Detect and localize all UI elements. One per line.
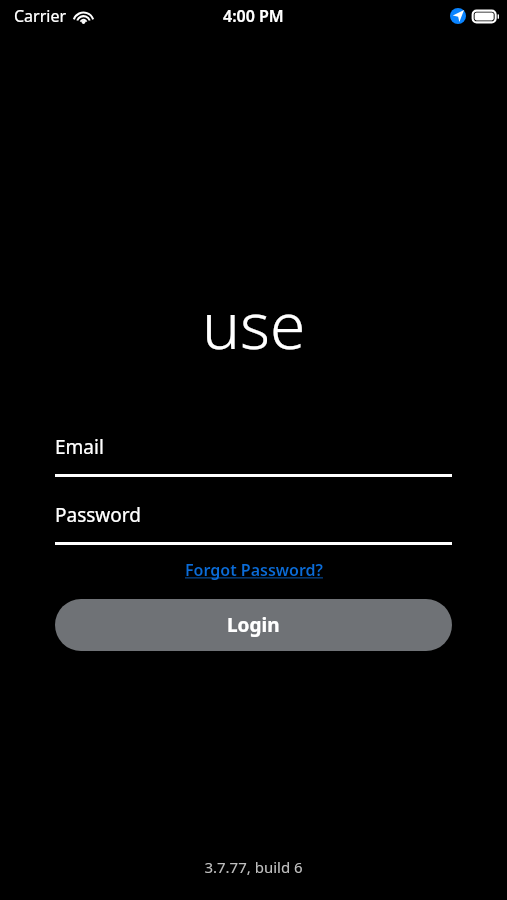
button[interactable]: Email bbox=[55, 434, 452, 477]
staticText: 4:00 PM bbox=[223, 5, 284, 27]
staticText: 3.7.77, build 6 bbox=[204, 857, 303, 877]
staticText: use bbox=[202, 281, 306, 368]
button[interactable]: Forgot Password? bbox=[0, 559, 507, 581]
staticText: Carrier bbox=[14, 5, 67, 27]
staticText: Email bbox=[55, 434, 104, 460]
staticText: Login bbox=[227, 612, 280, 638]
button[interactable]: Login bbox=[55, 599, 452, 651]
button[interactable]: Password bbox=[55, 502, 452, 545]
staticText: Forgot Password? bbox=[185, 559, 323, 581]
staticText: Password bbox=[55, 502, 141, 528]
